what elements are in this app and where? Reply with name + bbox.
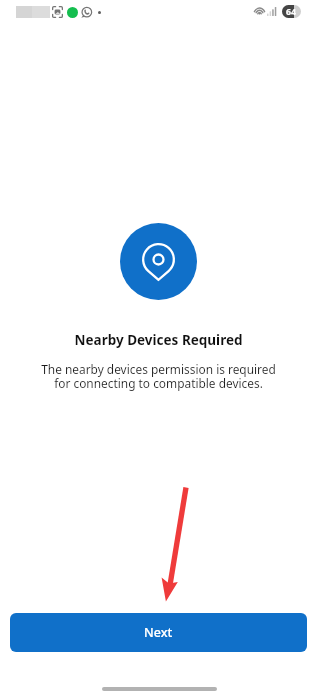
other: Wi-Fi — [254, 6, 265, 15]
staticText: The nearby devices permission is require… — [0, 361, 317, 392]
other: Battery 64 percent — [282, 5, 301, 18]
staticText: 64 — [286, 6, 297, 18]
other: Mobile signal — [267, 7, 276, 16]
other: Nearby devices location icon — [120, 223, 197, 300]
staticText: Next — [144, 624, 173, 641]
button[interactable]: Next — [10, 613, 307, 652]
staticText: Nearby Devices Required — [0, 331, 317, 349]
